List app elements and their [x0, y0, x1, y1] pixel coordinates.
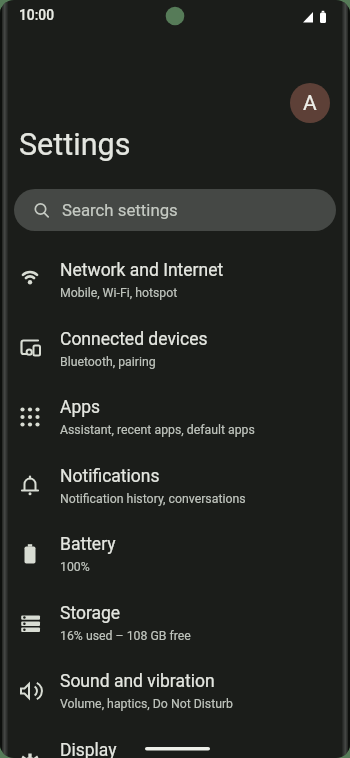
staticText: Assistant, recent apps, default apps	[60, 423, 255, 437]
staticText: Settings	[19, 127, 131, 163]
staticText: Search settings	[62, 200, 178, 220]
button[interactable]: Display	[0, 726, 350, 758]
button[interactable]: Connected devices	[0, 315, 350, 384]
button[interactable]: Battery	[0, 520, 350, 589]
staticText: Notifications	[60, 466, 160, 487]
button[interactable]: Network and Internet	[0, 246, 350, 315]
staticText: Mobile, Wi-Fi, hotspot	[60, 286, 178, 300]
button[interactable]: A	[290, 83, 330, 123]
staticText: 100%	[60, 560, 90, 574]
button[interactable]: Apps	[0, 383, 350, 452]
staticText: Sound and vibration	[60, 671, 215, 692]
button[interactable]: Search settings	[14, 189, 336, 231]
staticText: 10:00	[19, 7, 55, 23]
staticText: Notification history, conversations	[60, 492, 246, 506]
staticText: Bluetooth, pairing	[60, 355, 156, 369]
button[interactable]: Storage	[0, 589, 350, 658]
staticText: A	[303, 91, 317, 116]
staticText: Battery	[60, 534, 116, 555]
button[interactable]: Sound and vibration	[0, 657, 350, 726]
staticText: Connected devices	[60, 329, 208, 350]
staticText: Display	[60, 740, 117, 758]
staticText: 16% used – 108 GB free	[60, 629, 191, 643]
staticText: Apps	[60, 397, 101, 418]
staticText: Network and Internet	[60, 260, 224, 281]
staticText: Storage	[60, 603, 121, 624]
staticText: Volume, haptics, Do Not Disturb	[60, 697, 234, 711]
button[interactable]: Notifications	[0, 452, 350, 521]
